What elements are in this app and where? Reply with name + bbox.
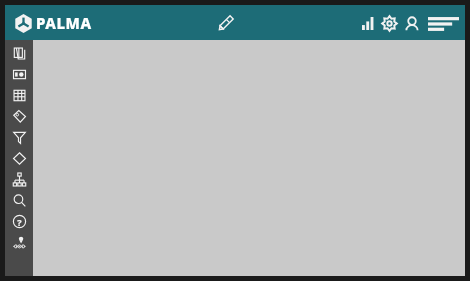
button[interactable]: Table [5, 85, 33, 106]
button[interactable]: Filter [5, 127, 33, 148]
button[interactable]: Search [5, 190, 33, 211]
staticText: ? [17, 216, 22, 228]
button[interactable]: Tags [5, 106, 33, 127]
button[interactable]: Settings [379, 13, 400, 34]
button[interactable]: Route [5, 232, 33, 253]
button[interactable]: ID card [5, 64, 33, 85]
button[interactable]: Account [401, 13, 422, 34]
button[interactable]: Help [5, 211, 33, 232]
button[interactable]: PALMA [14, 13, 92, 33]
button[interactable]: Hierarchy [5, 169, 33, 190]
button[interactable]: Panels [5, 43, 33, 64]
button[interactable]: Signal [358, 13, 378, 33]
staticText: PALMA [36, 13, 92, 33]
button[interactable]: Edit [212, 10, 238, 36]
button[interactable]: Menu [425, 11, 461, 35]
button[interactable]: Shapes [5, 148, 33, 169]
